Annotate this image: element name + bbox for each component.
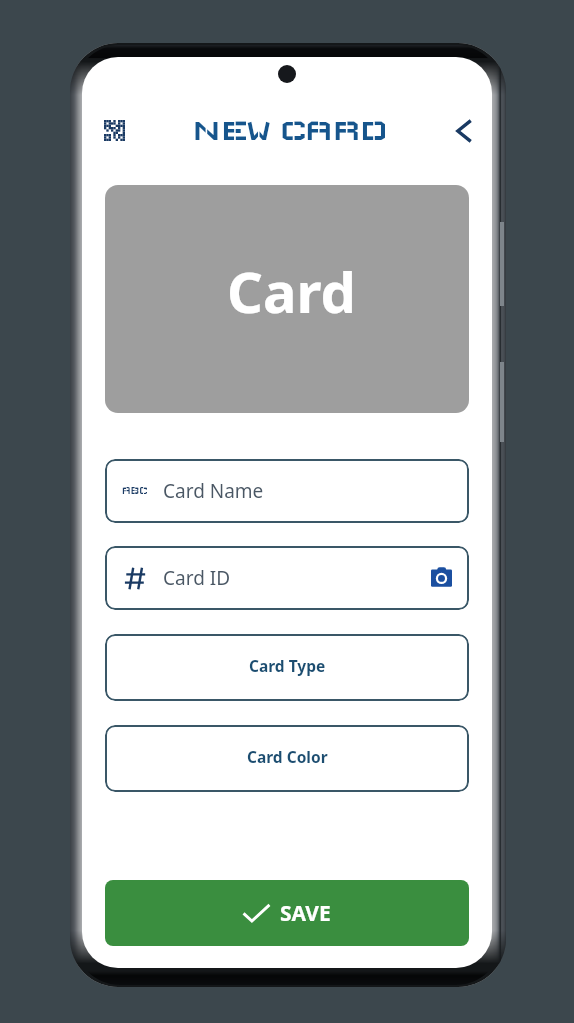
staticText: SAVE: [280, 899, 331, 928]
button[interactable]: Scan with camera: [424, 559, 458, 593]
button[interactable]: Back: [445, 112, 483, 150]
staticText: Card Name: [163, 478, 264, 504]
staticText: Card: [227, 253, 356, 329]
staticText: Card ID: [163, 565, 231, 591]
button[interactable]: Card ID: [105, 546, 469, 610]
button[interactable]: Card Type: [105, 634, 469, 701]
staticText: Card Type: [249, 655, 326, 676]
button[interactable]: ABC: [105, 459, 469, 523]
staticText: Card Color: [247, 746, 328, 767]
staticText: NEW CARD: [192, 114, 388, 146]
button[interactable]: SAVE: [105, 880, 469, 946]
button[interactable]: Card Color: [105, 725, 469, 792]
button[interactable]: Scan QR code: [96, 112, 132, 148]
staticText: ABC: [122, 486, 148, 496]
